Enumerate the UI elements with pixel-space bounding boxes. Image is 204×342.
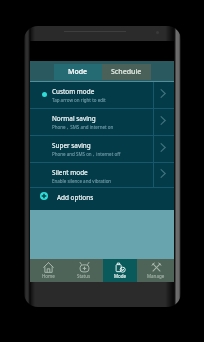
staticText: Normal saving bbox=[52, 114, 96, 123]
button[interactable]: Schedule bbox=[102, 64, 151, 80]
staticText: Silent mode bbox=[52, 168, 88, 177]
button[interactable]: Edit Silent mode bbox=[154, 163, 174, 188]
button[interactable]: Super saving bbox=[30, 136, 174, 162]
button[interactable]: Custom mode bbox=[30, 82, 174, 108]
button[interactable]: Normal saving bbox=[30, 109, 174, 135]
button[interactable]: Add options bbox=[30, 188, 174, 210]
staticText: Status bbox=[77, 273, 91, 279]
staticText: Phone , SMS and internet on bbox=[52, 124, 114, 130]
staticText: Enable silence and vibration bbox=[52, 178, 112, 184]
button[interactable]: Status bbox=[66, 259, 102, 282]
button[interactable]: Manage bbox=[138, 259, 174, 282]
staticText: Mode bbox=[114, 273, 127, 279]
button[interactable]: Silent mode bbox=[30, 163, 174, 187]
button[interactable]: Home bbox=[30, 259, 66, 282]
staticText: Custom mode bbox=[52, 87, 95, 96]
staticText: Home bbox=[42, 273, 55, 279]
staticText: Add options bbox=[57, 193, 94, 202]
button[interactable]: Mode bbox=[102, 259, 138, 282]
button[interactable]: Mode bbox=[54, 64, 102, 80]
staticText: Phone and SMS on , internet off bbox=[52, 151, 121, 157]
staticText: Tap arrow on right to edit bbox=[52, 97, 106, 103]
staticText: Manage bbox=[147, 273, 165, 279]
button[interactable]: Edit Custom mode bbox=[154, 82, 174, 109]
staticText: Super saving bbox=[52, 141, 91, 150]
button[interactable]: Edit Normal saving bbox=[154, 109, 174, 136]
staticText: Schedule bbox=[111, 67, 142, 77]
staticText: Mode bbox=[68, 67, 88, 77]
button[interactable]: Edit Super saving bbox=[154, 136, 174, 163]
